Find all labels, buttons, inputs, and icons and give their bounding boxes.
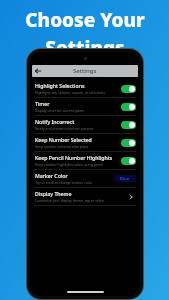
button[interactable]: Marker Color — [30, 170, 140, 187]
staticText: Highlight Selections — [35, 82, 85, 89]
staticText: Keep number selected after place — [35, 144, 89, 149]
button[interactable]: Highlight Selections — [30, 80, 140, 97]
staticText: Settings — [73, 67, 97, 75]
staticText: Choose Your — [25, 7, 145, 33]
staticText: Tap or scroll to change marker color — [35, 180, 93, 185]
staticText: Marker Color — [35, 172, 68, 179]
button[interactable]: Notify Incorrect — [121, 121, 136, 129]
staticText: Keep number highlights when using pencil — [35, 162, 104, 167]
button[interactable]: Keep Number Selected — [121, 139, 136, 147]
button[interactable]: Timer — [121, 103, 136, 111]
staticText: Keep Pencil Number Highlights — [35, 154, 113, 161]
staticText: Display timer for current game — [35, 108, 85, 113]
staticText: Timer — [35, 100, 50, 107]
staticText: Display Theme — [35, 190, 72, 197]
staticText: Customize your display theme, tap to sel… — [35, 198, 105, 203]
button[interactable]: Keep Pencil Number Highlights — [30, 152, 140, 169]
staticText: Blue — [120, 176, 130, 182]
staticText: Settings — [45, 35, 125, 61]
button[interactable]: Blue — [114, 175, 136, 182]
button[interactable]: Display Theme — [30, 188, 140, 205]
staticText: Highlight row, column, square, or select… — [35, 90, 105, 95]
button[interactable]: Back — [32, 65, 44, 77]
button[interactable]: Timer — [30, 98, 140, 115]
button[interactable]: Highlight Selections — [121, 85, 136, 93]
staticText: Notify and prevent incorrect guesses — [35, 126, 94, 131]
button[interactable]: Keep Number Selected — [30, 134, 140, 151]
staticText: Notify Incorrect — [35, 118, 75, 125]
button[interactable]: Display Theme — [126, 192, 136, 202]
button[interactable]: Keep Pencil Number Highlights — [121, 157, 136, 165]
staticText: Keep Number Selected — [35, 136, 92, 143]
button[interactable]: Notify Incorrect — [30, 116, 140, 133]
